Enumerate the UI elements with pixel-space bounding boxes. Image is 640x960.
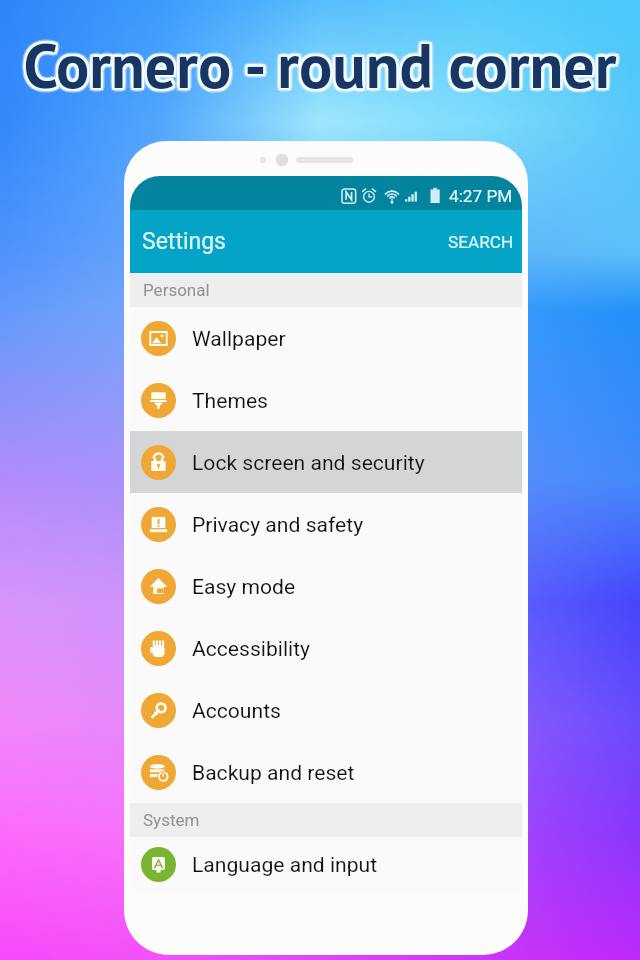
staticText: Accessibility: [192, 636, 311, 661]
staticText: Cornero - round corner: [0, 23, 638, 103]
staticText: Cornero - round corner: [1, 27, 640, 107]
button[interactable]: SEARCH: [434, 221, 522, 263]
staticText: Cornero - round corner: [0, 25, 636, 105]
button[interactable]: Themes: [130, 369, 522, 431]
button[interactable]: Backup and reset: [130, 741, 522, 803]
staticText: Cornero - round corner: [0, 25, 640, 105]
button[interactable]: Privacy and safety: [130, 493, 522, 555]
button[interactable]: Accounts: [130, 679, 522, 741]
staticText: 4:27 PM: [449, 186, 513, 206]
staticText: Cornero - round corner: [0, 23, 639, 103]
staticText: Cornero - round corner: [0, 29, 640, 109]
staticText: Personal: [143, 280, 210, 300]
staticText: Cornero - round corner: [0, 21, 640, 101]
staticText: Language and input: [192, 852, 378, 877]
staticText: Settings: [142, 228, 226, 255]
staticText: Cornero - round corner: [1, 23, 640, 103]
staticText: Lock screen and security: [192, 450, 425, 475]
staticText: Wallpaper: [192, 326, 286, 351]
staticText: Cornero - round corner: [0, 27, 639, 107]
staticText: System: [143, 810, 200, 830]
button[interactable]: Accessibility: [130, 617, 522, 679]
button[interactable]: Easy mode: [130, 555, 522, 617]
staticText: Cornero - round corner: [0, 27, 640, 107]
staticText: Cornero - round corner: [2, 27, 640, 107]
other: NFC, alarm, Wi-Fi, signal and battery st…: [342, 187, 441, 205]
staticText: Backup and reset: [192, 760, 355, 785]
staticText: Cornero - round corner: [0, 28, 637, 108]
staticText: Cornero - round corner: [2, 23, 640, 103]
staticText: Cornero - round corner: [0, 22, 637, 102]
staticText: Cornero - round corner: [4, 25, 640, 105]
staticText: Cornero - round corner: [0, 23, 640, 103]
button[interactable]: Language and input: [130, 837, 522, 892]
staticText: Cornero - round corner: [0, 27, 638, 107]
staticText: Cornero - round corner: [3, 28, 640, 108]
button[interactable]: Wallpaper: [130, 307, 522, 369]
staticText: Cornero - round corner: [3, 22, 640, 102]
staticText: Accounts: [192, 698, 281, 723]
staticText: Privacy and safety: [192, 512, 364, 537]
staticText: Cornero - round corner: [0, 25, 638, 105]
staticText: Easy mode: [192, 574, 296, 599]
staticText: SEARCH: [448, 232, 514, 252]
staticText: Themes: [192, 388, 268, 413]
button[interactable]: Lock screen and security: [130, 431, 522, 493]
staticText: Cornero - round corner: [2, 25, 640, 105]
